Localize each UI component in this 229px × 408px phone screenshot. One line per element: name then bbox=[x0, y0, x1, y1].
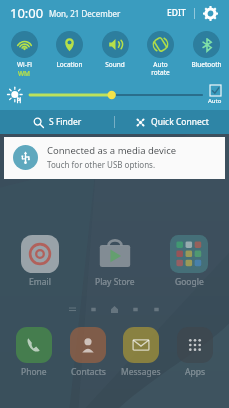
staticText: WM bbox=[18, 69, 31, 78]
button[interactable]: Wi-Fi bbox=[2, 29, 46, 80]
button[interactable]: EDIT bbox=[163, 4, 190, 22]
button[interactable]: Location bbox=[47, 29, 91, 71]
staticText: Connected as a media device bbox=[47, 144, 177, 157]
button[interactable]: Apps bbox=[169, 327, 221, 378]
button[interactable]: Phone bbox=[8, 327, 60, 378]
button[interactable]: Brightness bbox=[7, 87, 24, 104]
staticText: Apps bbox=[185, 366, 205, 378]
staticText: EDIT bbox=[167, 7, 186, 19]
staticText: Quick Connect bbox=[151, 116, 209, 128]
button[interactable]: Bluetooth bbox=[184, 29, 228, 71]
staticText: Wi-Fi bbox=[17, 60, 32, 69]
button[interactable] bbox=[30, 87, 202, 103]
button[interactable]: Contacts bbox=[62, 327, 114, 378]
staticText: Auto rotate bbox=[151, 60, 170, 77]
staticText: Play Store bbox=[95, 276, 135, 288]
button[interactable]: Settings bbox=[201, 4, 219, 22]
button[interactable]: Quick Connect bbox=[115, 110, 229, 134]
button[interactable]: Play Store bbox=[87, 235, 143, 288]
staticText: Messages bbox=[121, 366, 161, 378]
staticText: Auto bbox=[208, 97, 222, 105]
staticText: Contacts bbox=[71, 366, 106, 378]
button[interactable]: Sound bbox=[93, 29, 137, 71]
button[interactable]: S Finder bbox=[0, 110, 114, 134]
staticText: Email bbox=[29, 276, 51, 288]
staticText: Bluetooth bbox=[191, 60, 222, 69]
staticText: Touch for other USB options. bbox=[47, 159, 156, 170]
button[interactable]: Auto bbox=[208, 85, 222, 105]
button[interactable]: Connected as a media device bbox=[4, 137, 225, 179]
button[interactable]: Auto rotate bbox=[138, 29, 182, 79]
staticText: Mon, 21 December bbox=[49, 8, 121, 19]
staticText: Location bbox=[56, 60, 83, 69]
staticText: Phone bbox=[21, 366, 47, 378]
staticText: Google bbox=[175, 276, 204, 288]
button[interactable]: Google bbox=[161, 235, 217, 288]
button[interactable]: Messages bbox=[115, 327, 167, 378]
staticText: 10:00 bbox=[10, 4, 44, 22]
button[interactable]: Email bbox=[12, 235, 68, 288]
staticText: S Finder bbox=[49, 116, 82, 128]
staticText: Sound bbox=[105, 60, 125, 69]
